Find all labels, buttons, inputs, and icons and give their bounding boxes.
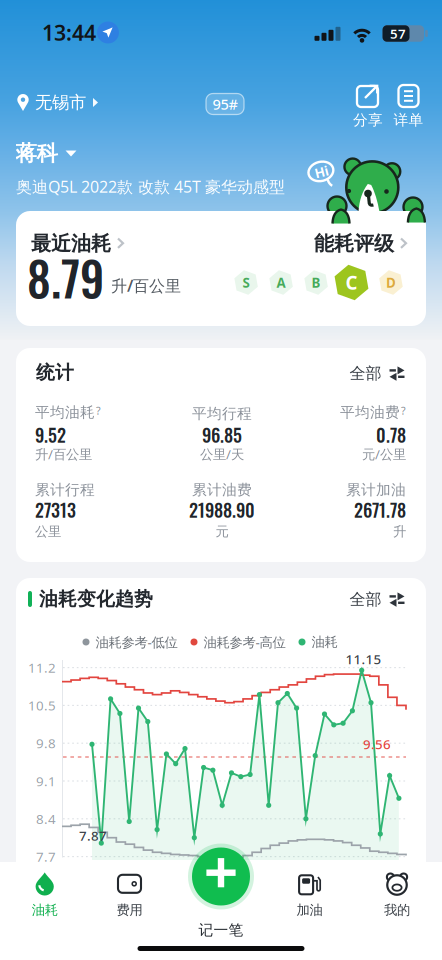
staticText: 公里: [35, 523, 61, 540]
staticText: 累计行程: [35, 481, 95, 499]
staticText: 分享: [353, 111, 383, 129]
staticText: 9.1: [36, 772, 56, 790]
staticText: 9.56: [363, 735, 391, 753]
staticText: S: [243, 274, 250, 291]
staticText: Hi: [314, 163, 328, 181]
staticText: 加油: [297, 902, 323, 918]
staticText: B: [312, 274, 321, 291]
button[interactable]: 记一笔: [188, 843, 254, 909]
staticText: 9.8: [36, 734, 56, 752]
staticText: 0.78: [376, 421, 406, 448]
staticText: 统计: [36, 361, 74, 384]
staticText: 累计加油: [346, 481, 406, 499]
button[interactable]: 全部: [344, 586, 410, 612]
staticText: 元: [215, 523, 228, 540]
button[interactable]: 费用: [94, 870, 164, 920]
staticText: 油耗参考-低位: [95, 633, 177, 651]
staticText: ?: [96, 403, 101, 418]
staticText: 升/百公里: [111, 275, 181, 296]
staticText: 13:44: [42, 18, 96, 47]
staticText: 油耗: [311, 634, 337, 650]
staticText: 平均油费: [340, 403, 400, 421]
staticText: 累计油费: [192, 481, 252, 499]
staticText: 详单: [393, 111, 423, 129]
button[interactable]: 无锡市: [17, 92, 99, 113]
staticText: C: [345, 270, 357, 295]
button[interactable]: 蒋科: [15, 140, 76, 167]
button[interactable]: 详单: [386, 83, 430, 129]
staticText: 10.5: [28, 696, 56, 714]
staticText: 能耗评级: [314, 231, 394, 256]
staticText: 蒋科: [15, 140, 57, 167]
staticText: 27313: [35, 496, 76, 523]
button[interactable]: 能耗评级: [306, 231, 416, 255]
staticText: 我的: [384, 902, 410, 918]
staticText: 公里/天: [200, 445, 244, 463]
staticText: 57: [390, 25, 406, 42]
staticText: 7.87: [79, 827, 107, 844]
staticText: 96.85: [202, 421, 242, 448]
staticText: 平均行程: [192, 404, 252, 422]
staticText: 元/公里: [362, 445, 406, 463]
button[interactable]: 我的: [362, 870, 432, 920]
staticText: 最近油耗: [31, 231, 111, 256]
button[interactable]: 油耗: [10, 870, 80, 920]
staticText: D: [386, 274, 396, 291]
staticText: 8.79: [27, 243, 104, 312]
staticText: 平均油耗: [35, 403, 95, 421]
staticText: 奥迪Q5L 2022款 改款 45T 豪华动感型: [16, 176, 285, 197]
staticText: 油耗变化趋势: [39, 587, 153, 610]
button[interactable]: 加油: [275, 870, 345, 920]
staticText: 升/百公里: [35, 445, 92, 463]
staticText: 2671.78: [354, 496, 406, 523]
staticText: 95#: [212, 94, 237, 114]
staticText: 11.15: [345, 650, 381, 668]
staticText: 油耗参考-高位: [203, 633, 285, 651]
button[interactable]: 全部: [344, 360, 410, 386]
staticText: 11.2: [28, 659, 56, 676]
staticText: 油耗: [32, 902, 58, 918]
staticText: 8.4: [36, 810, 56, 828]
staticText: 21988.90: [189, 496, 255, 523]
staticText: ?: [401, 403, 406, 418]
staticText: 9.52: [35, 421, 66, 448]
staticText: 费用: [116, 902, 142, 918]
button[interactable]: 分享: [346, 83, 390, 129]
button[interactable]: 95#: [205, 92, 245, 116]
button[interactable]: 最近油耗: [23, 231, 133, 255]
staticText: 7.7: [36, 848, 56, 865]
staticText: 记一笔: [198, 921, 243, 939]
staticText: 全部: [349, 590, 381, 609]
staticText: 升: [393, 523, 406, 540]
staticText: A: [277, 274, 286, 291]
staticText: 无锡市: [35, 92, 86, 113]
staticText: 全部: [349, 364, 381, 383]
